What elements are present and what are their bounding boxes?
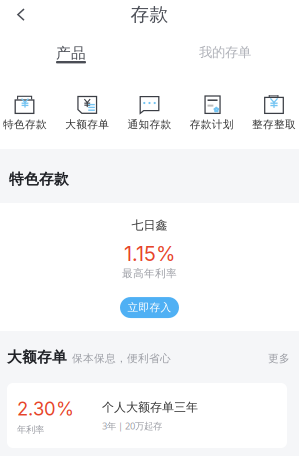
button[interactable]: 大额存单 [65,92,109,131]
staticText: 大额存单 [65,118,109,131]
staticText: 最高年利率 [122,267,177,280]
button[interactable]: 通知存款 [127,92,171,131]
staticText: 产品 [56,44,86,62]
staticText: 整存整取 [252,118,296,131]
staticText: 我的存单 [199,44,251,60]
staticText: 立即存入 [127,301,171,314]
staticText: 七日鑫 [131,218,167,233]
button[interactable]: 特色存款 [3,92,47,131]
staticText: 1.15% [124,242,175,266]
staticText: 存款计划 [190,118,234,131]
staticText: 年利率 [17,424,44,435]
staticText: 特色存款 [9,170,69,188]
staticText: 3年 | 20万起存 [102,420,162,432]
staticText: 更多 [268,352,290,365]
staticText: 个人大额存单三年 [102,400,198,415]
staticText: 特色存款 [3,118,47,131]
button[interactable]: 更多 [268,352,290,366]
button[interactable]: 2.30% [7,383,287,448]
button[interactable]: 存款计划 [190,92,234,131]
staticText: 大额存单 [7,348,67,366]
staticText: 通知存款 [127,118,171,131]
button[interactable]: Back [0,0,42,29]
staticText: 存款 [130,3,168,26]
staticText: 保本保息，便利省心 [72,352,171,365]
button[interactable]: 立即存入 [120,297,179,318]
button[interactable]: 整存整取 [252,92,296,131]
button[interactable]: 我的存单 [146,44,299,80]
button[interactable]: 产品 [0,44,146,80]
staticText: 2.30% [17,398,74,420]
